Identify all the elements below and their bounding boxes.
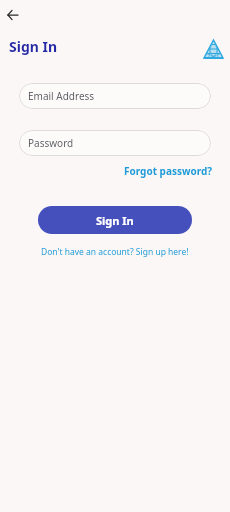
staticText: Forgot password? bbox=[124, 164, 213, 178]
button[interactable] bbox=[7, 9, 19, 21]
button[interactable]: Don't have an account? Sign up here! bbox=[41, 246, 189, 258]
button[interactable]: Sign In bbox=[38, 206, 192, 234]
staticText: Sign In bbox=[9, 37, 58, 56]
staticText: Email Address bbox=[28, 89, 95, 103]
staticText: Don't have an account? Sign up here! bbox=[41, 246, 189, 258]
staticText: Password bbox=[28, 136, 74, 150]
button[interactable]: Password bbox=[19, 130, 211, 156]
button[interactable]: Forgot password? bbox=[124, 164, 213, 178]
staticText: Sign In bbox=[96, 213, 134, 228]
button[interactable]: Email Address bbox=[19, 83, 211, 109]
